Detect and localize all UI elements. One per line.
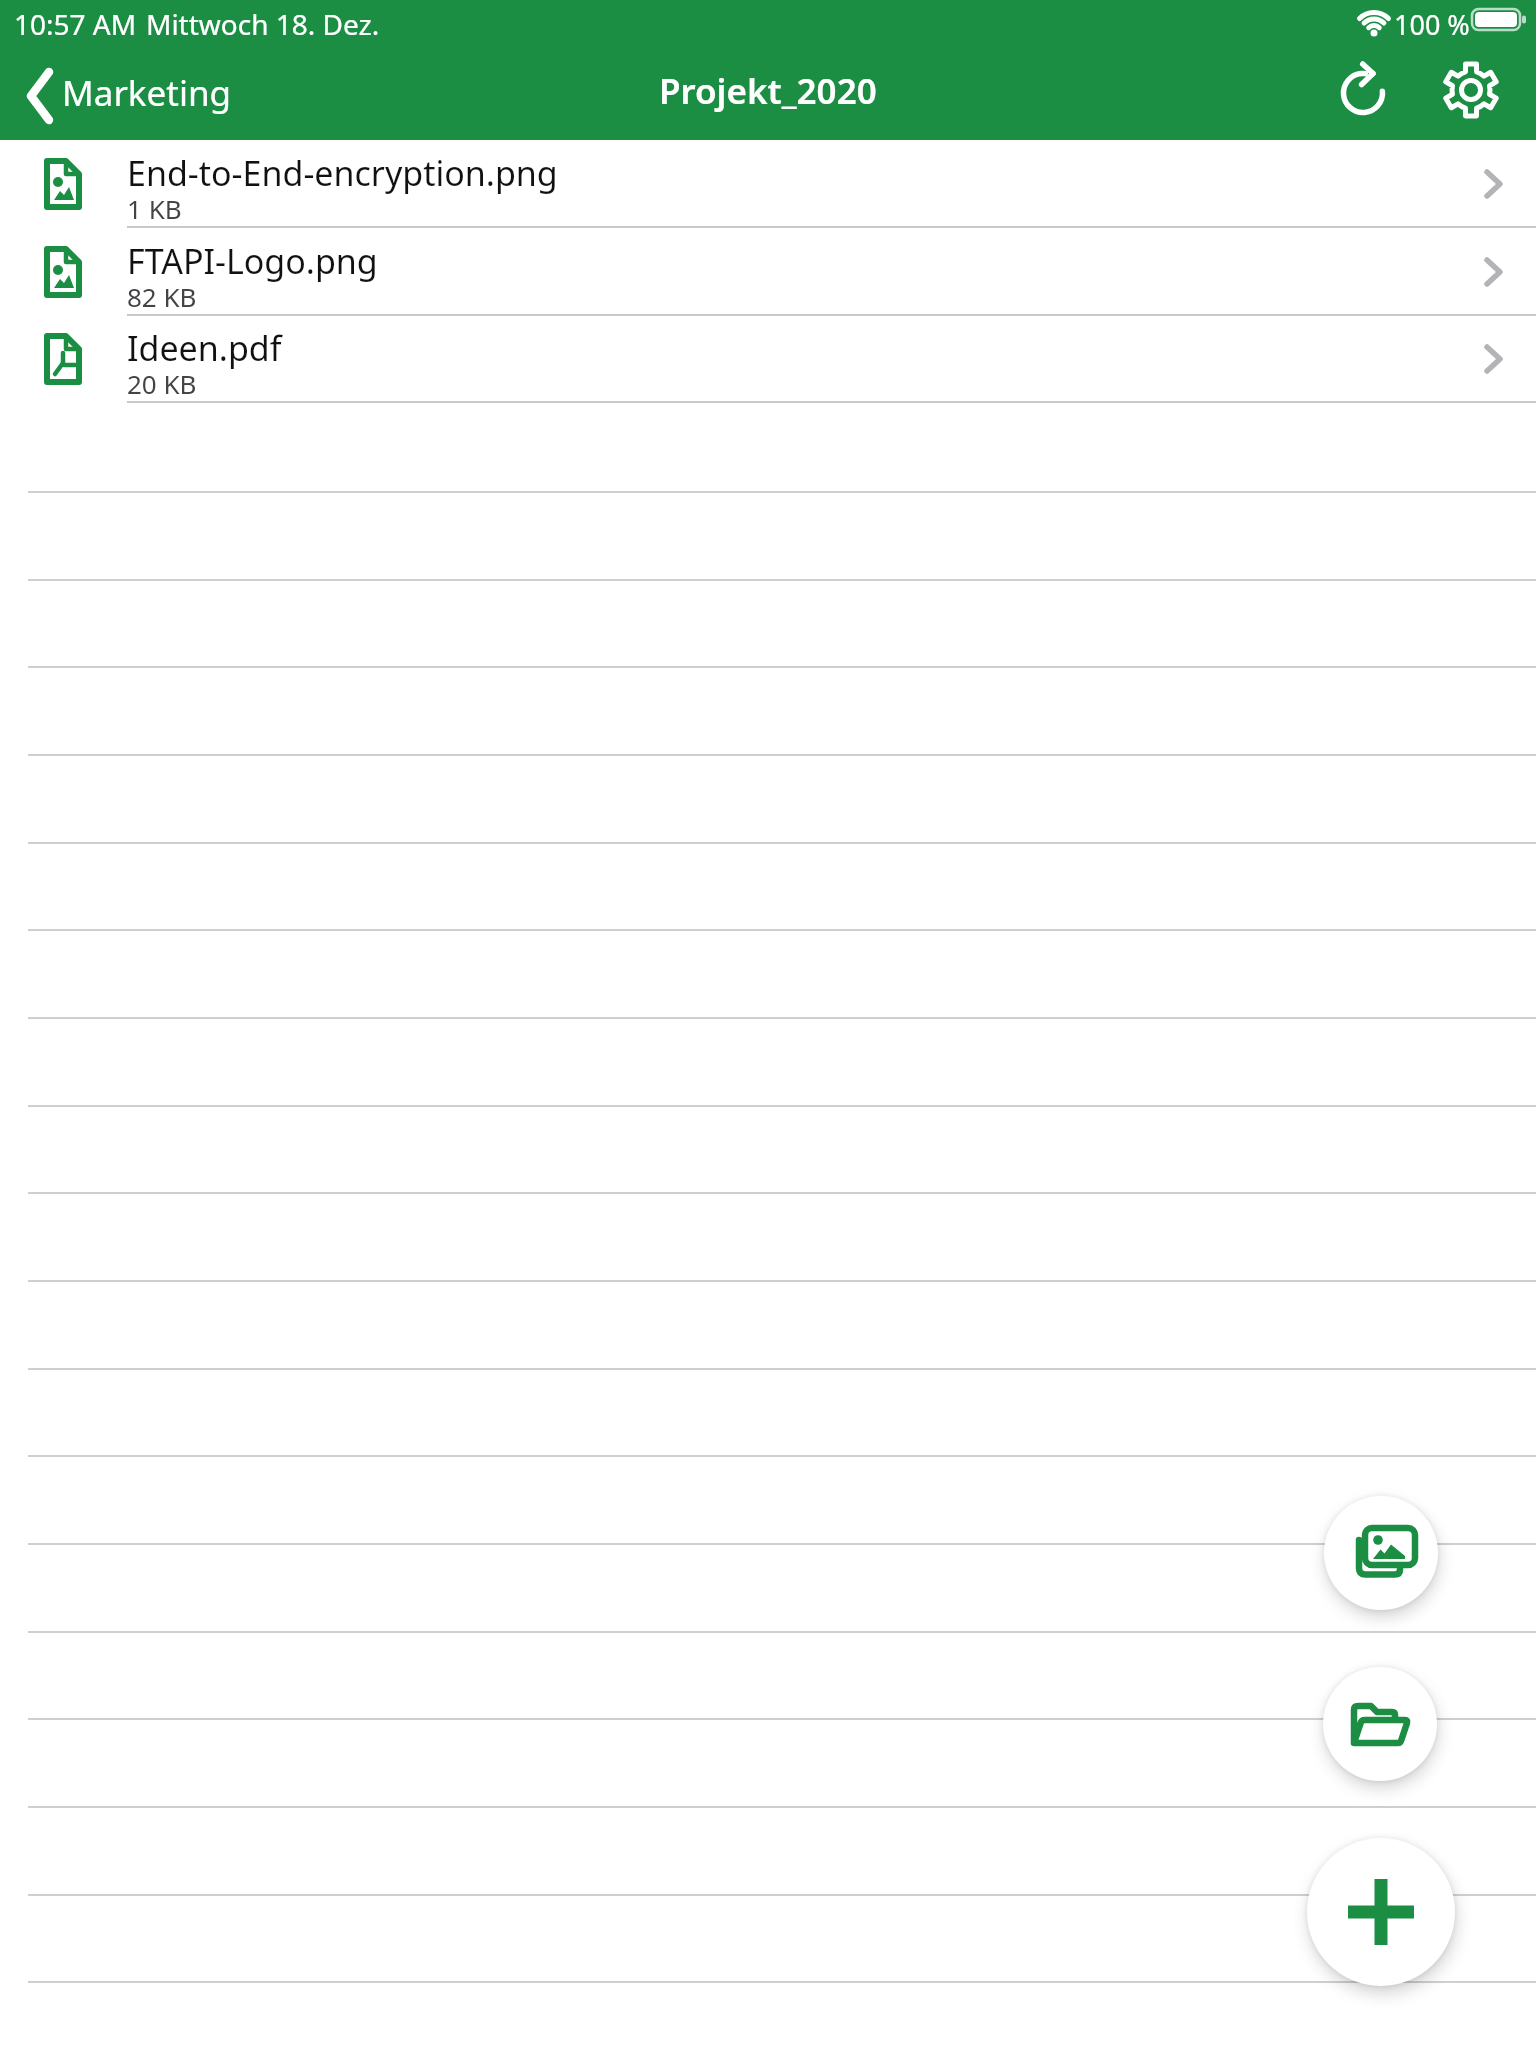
staticText: Ideen.pdf [127,325,282,371]
button[interactable] [1436,58,1506,122]
staticText: End-to-End-encryption.png [127,150,558,196]
staticText: Projekt_2020 [659,67,877,115]
staticText: Marketing [62,69,232,117]
staticText: FTAPI-Logo.png [127,238,378,284]
button[interactable] [1330,58,1396,122]
button[interactable]: Marketing [20,58,250,122]
staticText: 100 % [1394,6,1470,43]
staticText: 82 KB [127,279,197,314]
staticText: 10:57 AM [14,5,137,43]
button[interactable] [1324,1496,1438,1610]
staticText: Mittwoch 18. Dez. [146,5,380,43]
staticText: 1 KB [127,191,182,226]
button[interactable]: End-to-End-encryption.png [0,140,1536,228]
button[interactable] [1323,1667,1437,1781]
staticText: 20 KB [127,366,197,401]
button[interactable]: FTAPI-Logo.png [0,228,1536,316]
button[interactable] [1307,1838,1455,1986]
button[interactable]: Ideen.pdf [0,315,1536,403]
